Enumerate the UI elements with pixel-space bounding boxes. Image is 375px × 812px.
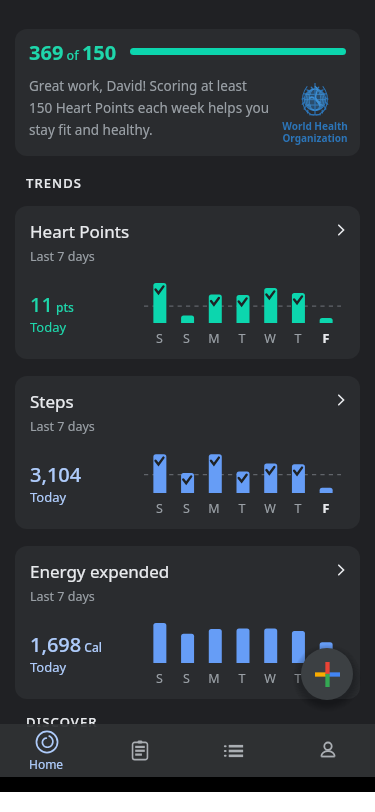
staticText: Today [30, 318, 67, 336]
button[interactable]: Journal [93, 724, 187, 777]
staticText: T [228, 670, 256, 687]
staticText: S [146, 670, 173, 687]
staticText: T [284, 670, 312, 687]
staticText: 11 pts [30, 291, 74, 318]
staticText: T [228, 500, 256, 517]
staticText: M [200, 330, 228, 347]
staticText: S [173, 330, 200, 347]
staticText: TRENDS [26, 174, 83, 192]
staticText: T [228, 330, 256, 347]
staticText: Steps [30, 390, 74, 413]
button[interactable]: Heart Points [15, 206, 360, 359]
button[interactable]: Add [301, 648, 353, 700]
staticText: Today [30, 658, 67, 676]
staticText: S [173, 670, 200, 687]
staticText: M [200, 500, 228, 517]
staticText: F [312, 500, 340, 517]
staticText: W [256, 670, 284, 687]
staticText: T [284, 330, 312, 347]
button[interactable]: Browse [187, 724, 281, 777]
staticText: S [146, 500, 173, 517]
staticText: W [256, 500, 284, 517]
staticText: World Health Organization [282, 119, 348, 145]
button[interactable]: Home [0, 724, 93, 777]
staticText: W [256, 330, 284, 347]
button[interactable]: Profile [281, 724, 375, 777]
staticText: F [312, 670, 340, 687]
staticText: S [173, 500, 200, 517]
staticText: Last 7 days [30, 418, 95, 435]
button[interactable]: Energy expended [15, 546, 360, 699]
staticText: T [284, 500, 312, 517]
button[interactable]: 369 of 150 [15, 29, 360, 156]
staticText: Last 7 days [30, 588, 95, 605]
staticText: 1,698 Cal [30, 631, 103, 658]
staticText: Great work, David! Scoring at least 150 … [29, 77, 270, 139]
staticText: F [312, 330, 340, 347]
button[interactable]: Open Heart Points [333, 222, 349, 238]
staticText: Last 7 days [30, 248, 95, 265]
button[interactable]: Steps [15, 376, 360, 529]
staticText: Energy expended [30, 560, 170, 583]
staticText: Heart Points [30, 220, 130, 243]
button[interactable]: Open Steps [333, 392, 349, 408]
staticText: S [146, 330, 173, 347]
button[interactable]: Open Energy expended [333, 562, 349, 578]
staticText: DISCOVER [26, 713, 98, 731]
staticText: 3,104 [30, 461, 82, 488]
staticText: M [200, 670, 228, 687]
staticText: 369 of 150 [29, 39, 117, 63]
staticText: Home [29, 756, 64, 772]
staticText: Today [30, 488, 67, 506]
